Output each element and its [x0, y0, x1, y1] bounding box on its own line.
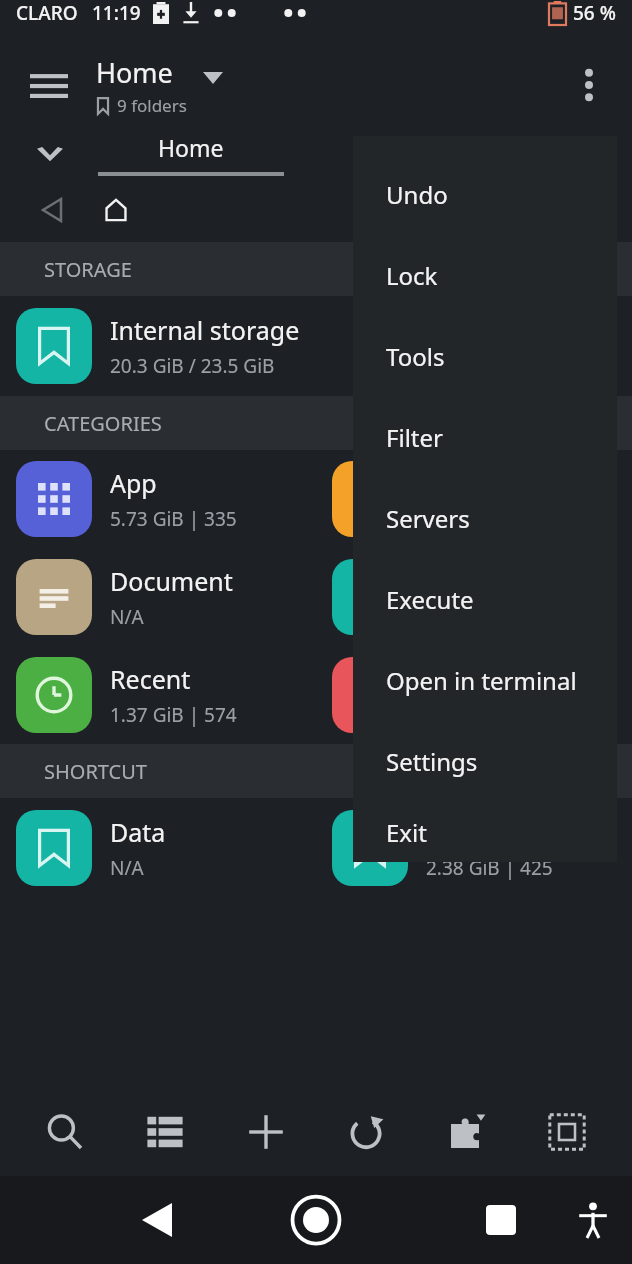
button[interactable]: List view [129, 1096, 201, 1168]
staticText: SHORTCUT [44, 758, 147, 785]
button[interactable]: Recent [16, 657, 237, 733]
staticText: CLARO [16, 0, 78, 26]
button[interactable]: SHORTCUT [0, 744, 632, 798]
staticText: 9 folders [117, 94, 187, 117]
button[interactable]: Select all [531, 1096, 603, 1168]
button[interactable]: STORAGE [0, 242, 632, 296]
staticText: Tools [386, 340, 445, 373]
button[interactable]: Tools [353, 316, 617, 397]
button[interactable]: Document [16, 559, 233, 635]
button[interactable]: Category [332, 461, 408, 537]
button[interactable]: Plugins [431, 1096, 503, 1168]
button[interactable]: More options [560, 56, 618, 114]
staticText: Exit [386, 816, 427, 849]
button[interactable]: Servers [353, 478, 617, 559]
staticText: Data [110, 815, 166, 849]
button[interactable]: Home [96, 54, 223, 117]
staticText: Open in terminal [386, 664, 577, 697]
staticText: N/A [110, 604, 144, 630]
button[interactable]: CATEGORIES [0, 396, 632, 450]
staticText: Recent [110, 662, 191, 696]
button[interactable]: Exit [353, 802, 617, 862]
staticText: Execute [386, 583, 474, 616]
button[interactable]: Internal storage [16, 308, 300, 384]
button[interactable]: Undo [353, 154, 617, 235]
staticText: Internal storage [110, 313, 300, 347]
staticText: Home [158, 132, 224, 163]
button[interactable]: Expand tabs [24, 128, 76, 180]
staticText: Settings [386, 745, 478, 778]
button[interactable]: Home [96, 190, 136, 230]
button[interactable]: Download [332, 810, 553, 886]
staticText: CATEGORIES [44, 410, 162, 437]
staticText: Document [110, 564, 233, 598]
button[interactable]: Add [230, 1096, 302, 1168]
staticText: 56 % [573, 0, 616, 26]
staticText: 5.73 GiB | 335 [110, 506, 237, 532]
button[interactable]: Category [332, 559, 408, 635]
button[interactable]: Home [98, 132, 284, 176]
staticText: N/A [110, 855, 144, 881]
button[interactable]: Accessibility [564, 1191, 622, 1249]
button[interactable]: Recent apps [470, 1189, 532, 1251]
button[interactable]: Back [32, 190, 72, 230]
staticText: Lock [386, 259, 438, 292]
staticText: 2.38 GiB | 425 [426, 855, 553, 881]
button[interactable]: Lock [353, 235, 617, 316]
button[interactable]: Back [126, 1189, 188, 1251]
button[interactable]: Refresh [330, 1096, 402, 1168]
button[interactable]: Execute [353, 559, 617, 640]
button[interactable]: App [16, 461, 237, 537]
button[interactable]: Search [29, 1096, 101, 1168]
staticText: Servers [386, 502, 470, 535]
staticText: App [110, 466, 157, 500]
button[interactable]: Filter [353, 397, 617, 478]
staticText: Download [426, 815, 545, 849]
button[interactable]: Settings [353, 721, 617, 802]
staticText: Undo [386, 178, 448, 211]
staticText: 1.37 GiB | 574 [110, 702, 237, 728]
staticText: 20.3 GiB / 23.5 GiB [110, 353, 275, 379]
button[interactable]: Open navigation drawer [18, 54, 80, 116]
button[interactable]: Data [16, 810, 166, 886]
button[interactable]: Home [282, 1186, 350, 1254]
staticText: Filter [386, 421, 443, 454]
staticText: 11:19 [92, 0, 141, 26]
staticText: Home [96, 54, 173, 91]
button[interactable]: Open in terminal [353, 640, 617, 721]
button[interactable]: Category [332, 657, 408, 733]
staticText: STORAGE [44, 256, 132, 283]
